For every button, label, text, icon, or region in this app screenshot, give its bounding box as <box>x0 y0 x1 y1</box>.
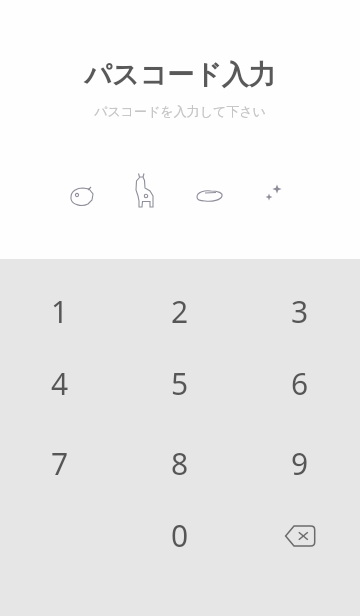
staticText: 2 <box>171 291 189 332</box>
staticText: パスコードを入力して下さい <box>0 103 360 119</box>
staticText: 7 <box>51 443 69 484</box>
button[interactable]: 2 <box>120 259 240 343</box>
button[interactable]: 8 <box>120 423 240 503</box>
button[interactable]: 1 <box>0 259 120 343</box>
button[interactable]: 6 <box>240 343 360 423</box>
staticText: 4 <box>51 363 69 404</box>
button[interactable]: 9 <box>240 423 360 503</box>
staticText: 3 <box>291 291 309 332</box>
staticText: 0 <box>171 515 189 556</box>
button[interactable]: Backspace <box>240 503 360 612</box>
staticText: 6 <box>291 363 309 404</box>
button[interactable]: 5 <box>120 343 240 423</box>
staticText: 9 <box>291 443 309 484</box>
button[interactable]: 4 <box>0 343 120 423</box>
staticText: 8 <box>171 443 189 484</box>
button[interactable]: 0 <box>120 503 240 612</box>
button[interactable]: 7 <box>0 423 120 503</box>
staticText: 1 <box>51 291 69 332</box>
staticText: パスコード入力 <box>0 58 360 92</box>
button[interactable]: 3 <box>240 259 360 343</box>
staticText: 5 <box>171 363 189 404</box>
